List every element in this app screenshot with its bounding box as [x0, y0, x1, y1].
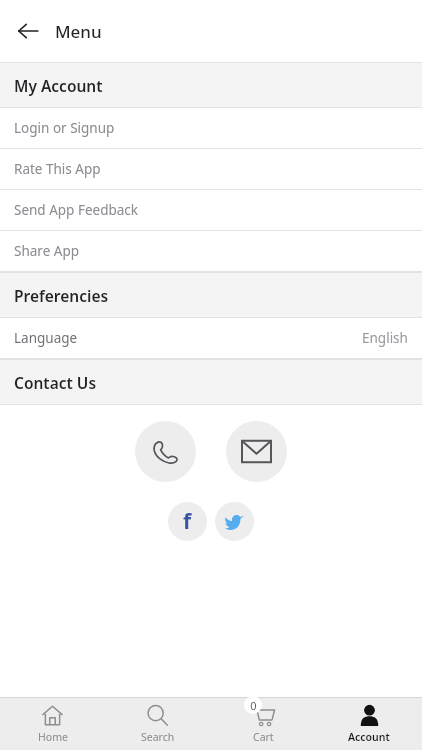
staticText: Search — [141, 730, 175, 744]
staticText: My Account — [14, 75, 103, 96]
button[interactable]: Rate This App — [0, 149, 422, 190]
staticText: Home — [38, 730, 68, 744]
staticText: Contact Us — [14, 372, 97, 393]
button[interactable]: Login or Signup — [0, 108, 422, 149]
staticText: f — [183, 507, 192, 536]
button[interactable]: Home — [0, 698, 105, 750]
staticText: Language — [14, 329, 78, 347]
staticText: Account — [348, 730, 390, 744]
staticText: Send App Feedback — [14, 201, 139, 219]
button[interactable]: Account — [316, 698, 422, 750]
button[interactable]: Back — [8, 11, 48, 51]
staticText: English — [362, 329, 408, 347]
staticText: Share App — [14, 242, 79, 260]
button[interactable]: Send App Feedback — [0, 190, 422, 231]
staticText: Preferencies — [14, 285, 109, 306]
staticText: Rate This App — [14, 160, 101, 178]
button[interactable]: 0 — [210, 698, 316, 750]
staticText: Cart — [253, 730, 274, 744]
button[interactable]: Share App — [0, 231, 422, 272]
button[interactable]: Call us — [135, 421, 196, 482]
staticText: Login or Signup — [14, 119, 115, 137]
button[interactable]: Twitter — [215, 502, 254, 541]
button[interactable]: Search — [105, 698, 210, 750]
button[interactable]: Language — [0, 318, 422, 359]
button[interactable]: Facebook — [168, 502, 207, 541]
button[interactable]: Email us — [226, 421, 287, 482]
staticText: Menu — [55, 20, 102, 43]
staticText: 0 — [250, 698, 257, 713]
